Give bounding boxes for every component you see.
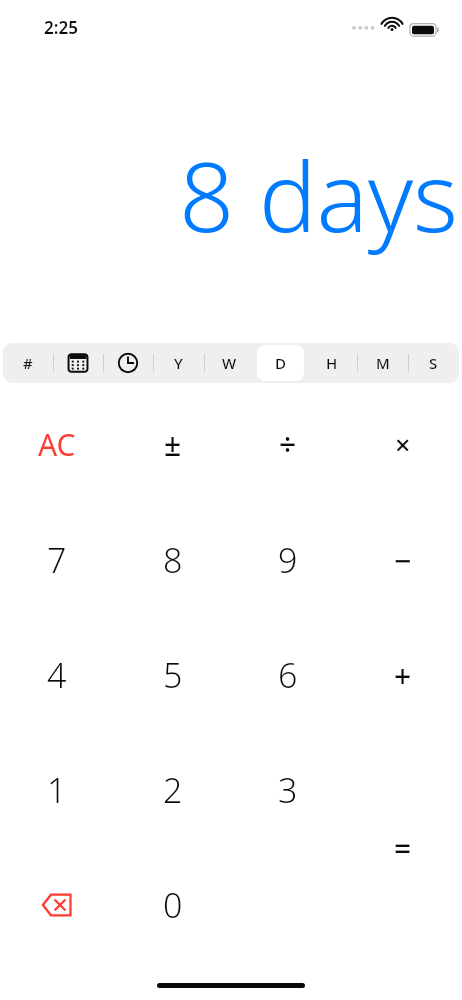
button[interactable]: M — [357, 343, 408, 383]
button[interactable]: W — [204, 343, 255, 383]
button[interactable]: AC — [2, 394, 112, 494]
staticText: 7 — [47, 537, 67, 583]
button[interactable]: ± — [118, 394, 228, 494]
button[interactable]: H — [306, 343, 357, 383]
button[interactable]: 0 — [118, 855, 228, 955]
button[interactable]: 6 — [233, 625, 343, 725]
staticText: 4 — [47, 652, 67, 698]
button[interactable]: = — [348, 798, 458, 898]
staticText: ± — [164, 424, 182, 465]
staticText: W — [222, 353, 237, 373]
staticText: # — [23, 353, 33, 373]
button[interactable]: 2 — [118, 740, 228, 840]
staticText: D — [275, 353, 286, 373]
button[interactable]: Y — [153, 343, 204, 383]
staticText: 8 days — [179, 129, 458, 260]
staticText: − — [394, 540, 412, 581]
staticText: S — [429, 353, 438, 373]
button[interactable]: 1 — [2, 740, 112, 840]
other: Calendar — [67, 352, 89, 374]
button[interactable]: 7 — [2, 510, 112, 610]
staticText: 9 — [278, 537, 298, 583]
staticText: + — [394, 655, 412, 696]
staticText: 5 — [163, 652, 183, 698]
other: Clock — [117, 352, 139, 374]
button[interactable]: D — [255, 343, 306, 383]
staticText: 1 — [47, 767, 67, 813]
staticText: H — [326, 353, 338, 373]
staticText: 3 — [278, 767, 298, 813]
staticText: 2:25 — [44, 16, 78, 39]
button[interactable]: Calendar — [53, 343, 103, 383]
button[interactable]: × — [348, 394, 458, 494]
button[interactable]: + — [348, 625, 458, 725]
staticText: ÷ — [279, 424, 297, 465]
staticText: 8 — [163, 537, 183, 583]
button[interactable]: − — [348, 510, 458, 610]
staticText: × — [395, 426, 411, 463]
staticText: 6 — [278, 652, 298, 698]
staticText: AC — [38, 424, 76, 465]
button[interactable]: 5 — [118, 625, 228, 725]
staticText: = — [394, 828, 412, 869]
button[interactable]: Delete — [2, 855, 112, 955]
button[interactable]: 4 — [2, 625, 112, 725]
button[interactable]: 3 — [233, 740, 343, 840]
staticText: Y — [174, 353, 183, 373]
staticText: 0 — [163, 882, 183, 928]
button[interactable]: 8 — [118, 510, 228, 610]
button[interactable]: S — [408, 343, 459, 383]
staticText: M — [376, 353, 390, 373]
button[interactable]: ÷ — [233, 394, 343, 494]
button[interactable]: 9 — [233, 510, 343, 610]
staticText: 2 — [163, 767, 183, 813]
button[interactable]: # — [3, 343, 53, 383]
button[interactable]: Clock — [103, 343, 153, 383]
